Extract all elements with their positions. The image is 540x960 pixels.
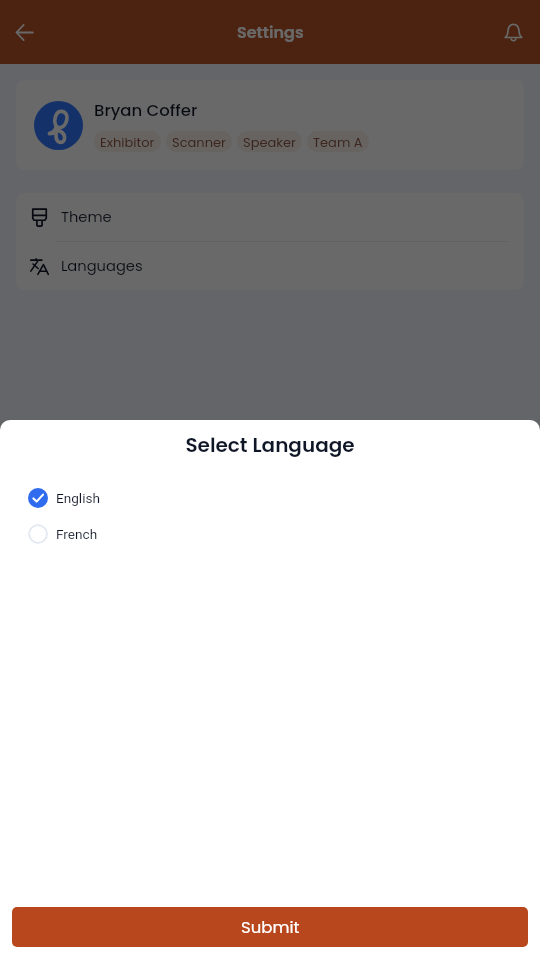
staticText: Settings — [237, 21, 304, 43]
staticText: Select Language — [0, 431, 540, 459]
staticText: Exhibitor — [100, 133, 155, 151]
button[interactable]: Languages — [16, 242, 524, 290]
button[interactable]: Back — [2, 10, 46, 54]
button[interactable]: French — [0, 520, 540, 548]
button[interactable]: Theme — [16, 193, 524, 241]
staticText: Submit — [241, 916, 300, 939]
staticText: Bryan Coffer — [94, 99, 198, 122]
button[interactable]: Notifications — [491, 10, 535, 54]
staticText: Speaker — [243, 133, 296, 151]
staticText: Languages — [61, 256, 143, 277]
staticText: Team A — [313, 133, 363, 151]
staticText: English — [56, 490, 100, 506]
button[interactable]: English — [0, 484, 540, 512]
staticText: Theme — [61, 207, 112, 228]
staticText: French — [56, 526, 98, 542]
button[interactable]: Submit — [12, 907, 528, 947]
staticText: Scanner — [172, 133, 226, 151]
